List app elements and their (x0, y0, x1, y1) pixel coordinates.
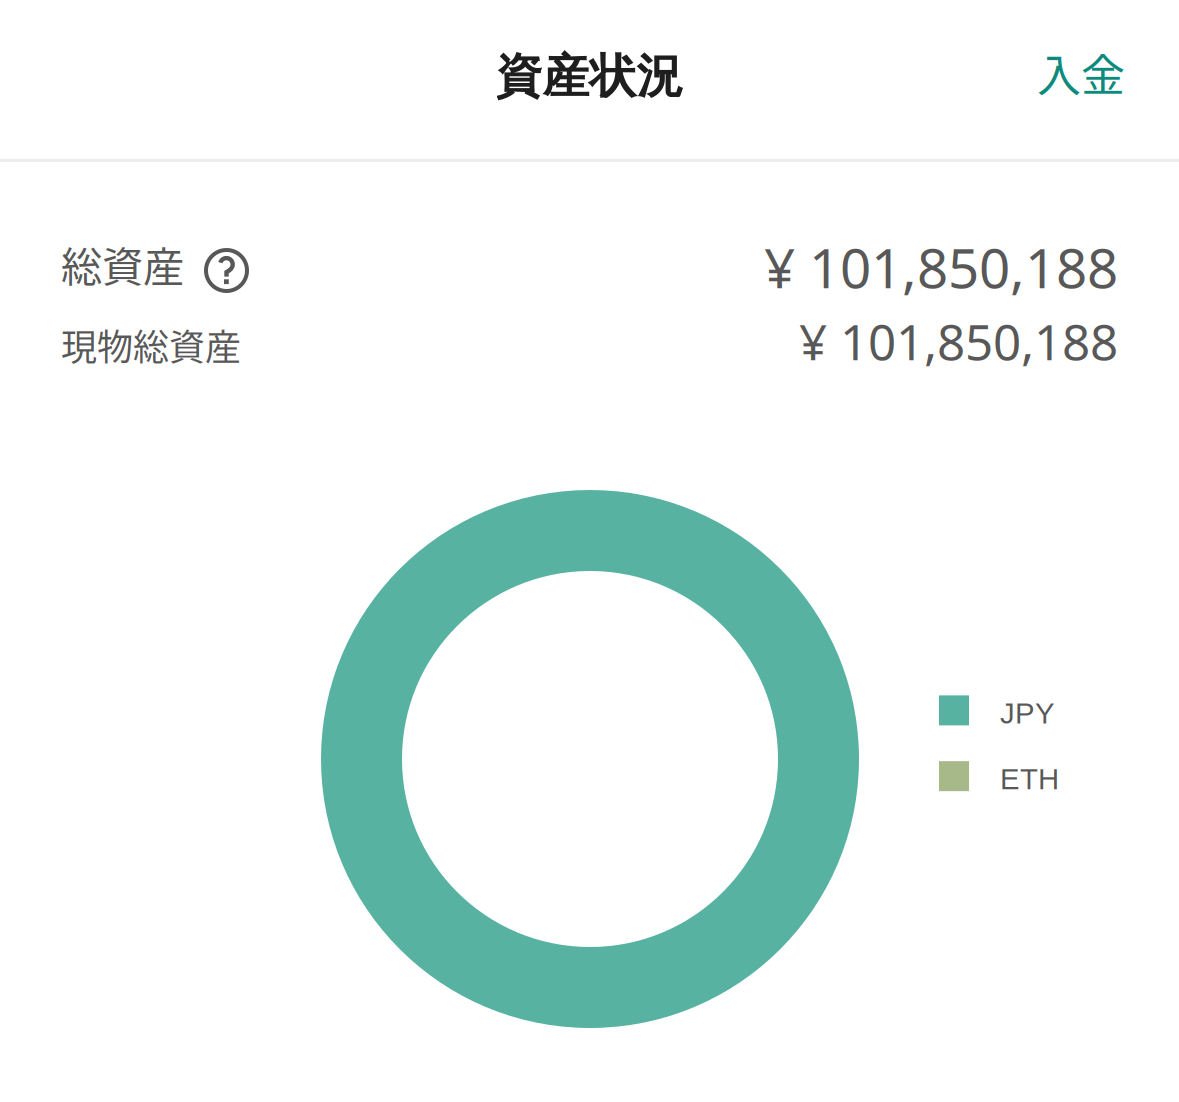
staticText: 資産状況 (495, 47, 683, 106)
staticText: 現物総資産 (61, 319, 241, 371)
staticText: JPY (1000, 697, 1055, 730)
staticText: ¥ 101,850,188 (764, 231, 1118, 303)
staticText: 総資産 (61, 234, 184, 294)
staticText: 入金 (1037, 41, 1125, 104)
button[interactable]: 総資産について (184, 235, 249, 293)
staticText: ETH (1000, 763, 1059, 796)
button[interactable]: 入金 (1007, 23, 1179, 136)
staticText: ¥ 101,850,188 (799, 308, 1118, 374)
